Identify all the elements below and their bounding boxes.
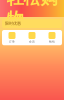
- staticText: 钱包: [49, 40, 55, 43]
- button[interactable]: 钱包: [42, 32, 62, 43]
- button[interactable]: 会员: [22, 32, 42, 43]
- staticText: 会员: [29, 40, 35, 43]
- staticText: 轻松购物: [6, 0, 57, 30]
- staticText: 订单: [9, 40, 15, 43]
- staticText: 限时优惠: [5, 21, 21, 26]
- button[interactable]: 订单: [2, 32, 22, 43]
